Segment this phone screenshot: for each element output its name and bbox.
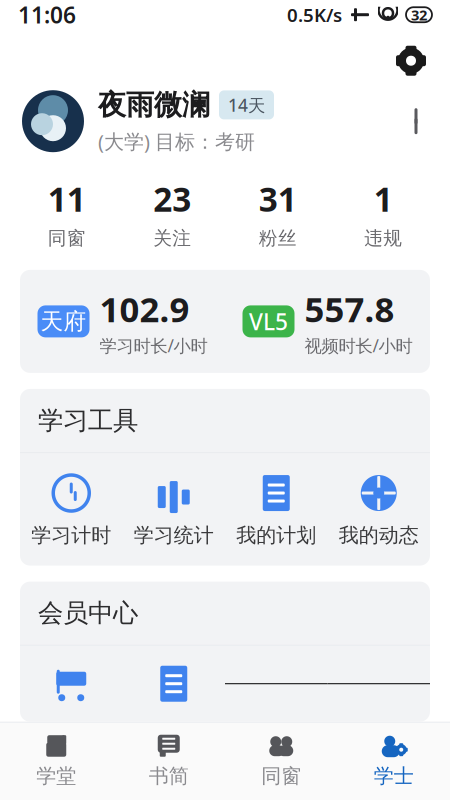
staticText: 我的动态 (339, 523, 419, 548)
staticText: 关注 (153, 227, 191, 250)
staticText: 14天 (228, 93, 265, 116)
staticText: 违规 (364, 227, 402, 250)
staticText: 视频时长/小时 (304, 334, 412, 357)
button[interactable]: 书简 (112, 731, 225, 790)
staticText: 学士 (374, 764, 414, 788)
staticText: 同窗 (48, 227, 86, 250)
button[interactable]: 商城 (20, 664, 122, 704)
staticText: 32 (411, 5, 427, 24)
staticText: 学习时长/小时 (99, 334, 207, 357)
button[interactable]: 我的动态 (327, 473, 430, 548)
staticText: 31 (259, 177, 297, 221)
button[interactable]: 学习计时 (20, 473, 122, 548)
button[interactable]: 学习统计 (122, 473, 225, 548)
staticText: 粉丝 (259, 227, 297, 250)
staticText: 557.8 (304, 286, 394, 332)
button[interactable]: 学堂 (0, 731, 112, 790)
button[interactable]: 11 (14, 173, 119, 254)
staticText: 0.5K/s (287, 2, 342, 27)
staticText: 学习统计 (134, 523, 214, 548)
staticText: 学堂 (36, 764, 76, 788)
staticText: 书简 (149, 764, 189, 788)
staticText: 会员中心 (38, 598, 138, 629)
staticText: 我的计划 (236, 523, 316, 548)
button[interactable]: Settings (388, 38, 434, 84)
staticText: (大学) 目标：考研 (98, 128, 255, 155)
button[interactable]: 学士 (337, 731, 450, 790)
staticText: 同窗 (261, 764, 301, 788)
staticText: 11:06 (18, 0, 76, 30)
staticText: 23 (153, 177, 191, 221)
button[interactable]: 1 (330, 173, 436, 254)
staticText: 11 (48, 177, 86, 221)
staticText: 夜雨微澜 (98, 88, 210, 122)
button[interactable]: 23 (119, 173, 225, 254)
staticText: 学习计时 (31, 523, 111, 548)
button[interactable]: 订单 (122, 664, 225, 704)
staticText: 天府 (40, 307, 86, 335)
staticText: 102.9 (99, 286, 189, 332)
staticText: VL5 (249, 306, 288, 336)
button[interactable]: 31 (225, 173, 330, 254)
button[interactable]: 我的计划 (225, 473, 327, 548)
staticText: 1 (374, 177, 393, 221)
button[interactable]: 同窗 (225, 731, 337, 790)
button[interactable]: 夜雨微澜 (0, 84, 450, 159)
staticText: 学习工具 (38, 405, 138, 436)
